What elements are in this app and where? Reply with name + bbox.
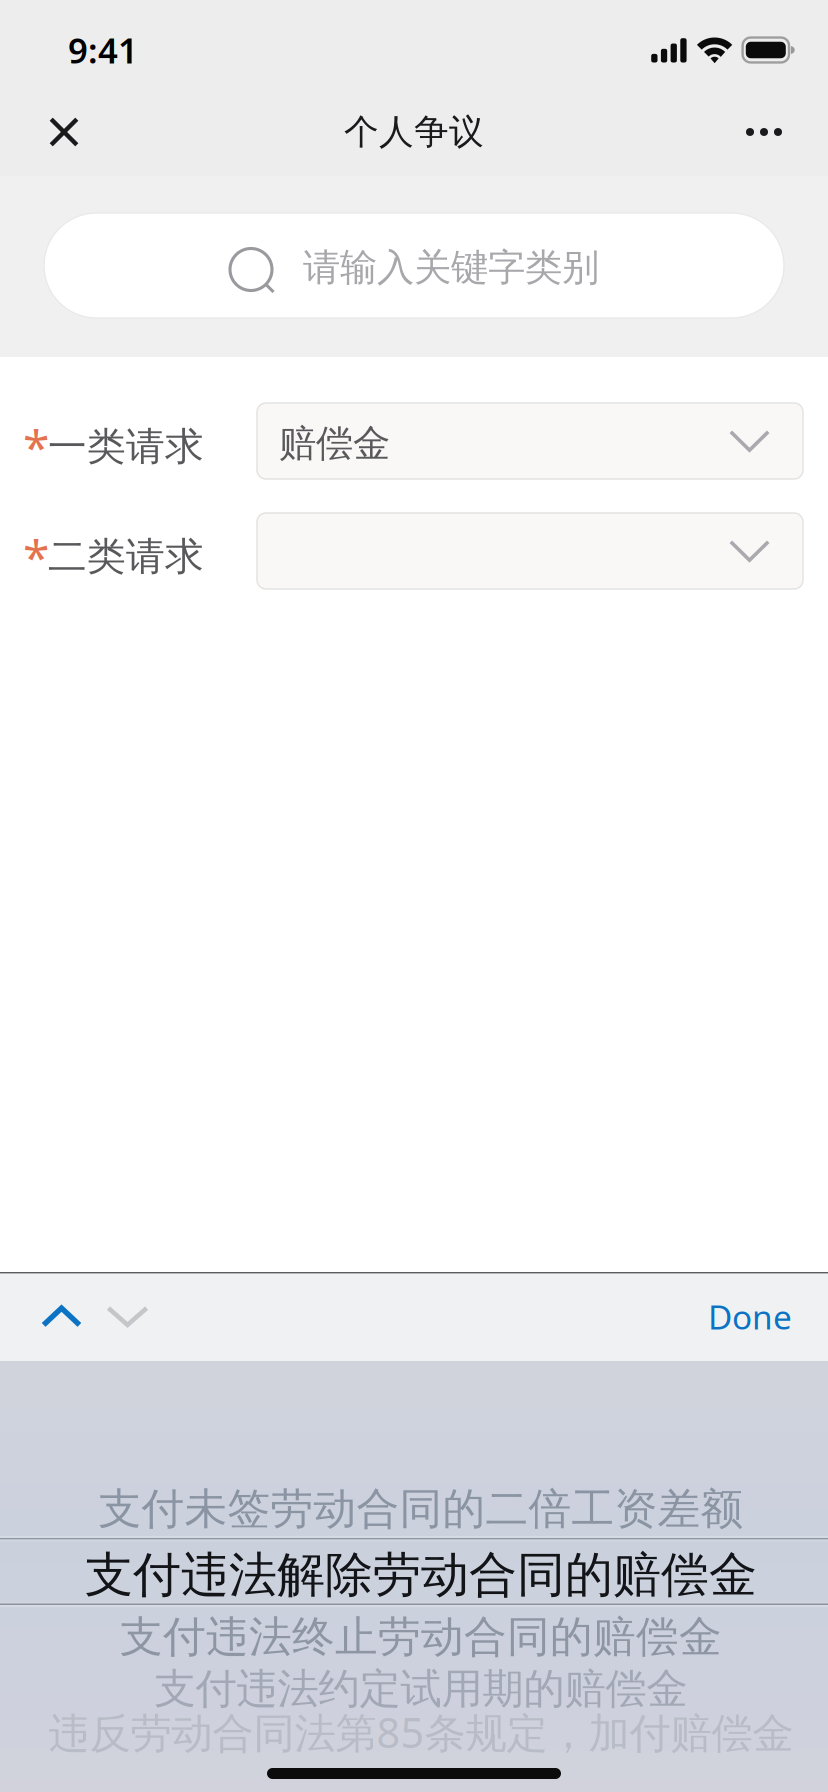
staticText: 支付违法终止劳动合同的赔偿金 bbox=[120, 1611, 722, 1663]
staticText: 支付违法约定试用期的赔偿金 bbox=[154, 1664, 687, 1714]
button[interactable]: More options bbox=[721, 88, 807, 176]
staticText: 赔偿金 bbox=[279, 421, 390, 466]
staticText: 支付未签劳动合同的二倍工资差额 bbox=[98, 1483, 743, 1535]
button[interactable]: 违反劳动合同法第85条规定，加付赔偿金 bbox=[0, 1699, 828, 1765]
button[interactable]: Close bbox=[21, 88, 107, 176]
staticText: * bbox=[23, 415, 49, 478]
staticText: 个人争议 bbox=[344, 111, 484, 153]
button[interactable]: 请输入关键字类别 bbox=[44, 213, 784, 318]
staticText: 请输入关键字类别 bbox=[303, 245, 599, 290]
button[interactable]: 支付违法终止劳动合同的赔偿金 bbox=[0, 1604, 828, 1670]
button[interactable]: Previous field bbox=[29, 1272, 94, 1360]
staticText: 二类请求 bbox=[48, 533, 204, 580]
button[interactable]: 赔偿金 bbox=[257, 403, 803, 479]
staticText: 一类请求 bbox=[48, 423, 204, 470]
button[interactable]: 支付违法约定试用期的赔偿金 bbox=[0, 1656, 828, 1722]
staticText: * bbox=[23, 525, 49, 588]
staticText: 9:41 bbox=[68, 27, 138, 73]
button[interactable]: Next field bbox=[94, 1272, 161, 1360]
staticText: Done bbox=[708, 1294, 792, 1339]
button[interactable]: Done bbox=[688, 1272, 809, 1360]
button[interactable]: 支付未签劳动合同的二倍工资差额 bbox=[0, 1476, 828, 1542]
staticText: 支付违法解除劳动合同的赔偿金 bbox=[85, 1545, 757, 1604]
button[interactable]: 支付违法解除劳动合同的赔偿金 bbox=[0, 1542, 828, 1608]
staticText: 违反劳动合同法第85条规定，加付赔偿金 bbox=[48, 1705, 793, 1759]
button[interactable]: 二类请求 selector bbox=[257, 513, 803, 589]
